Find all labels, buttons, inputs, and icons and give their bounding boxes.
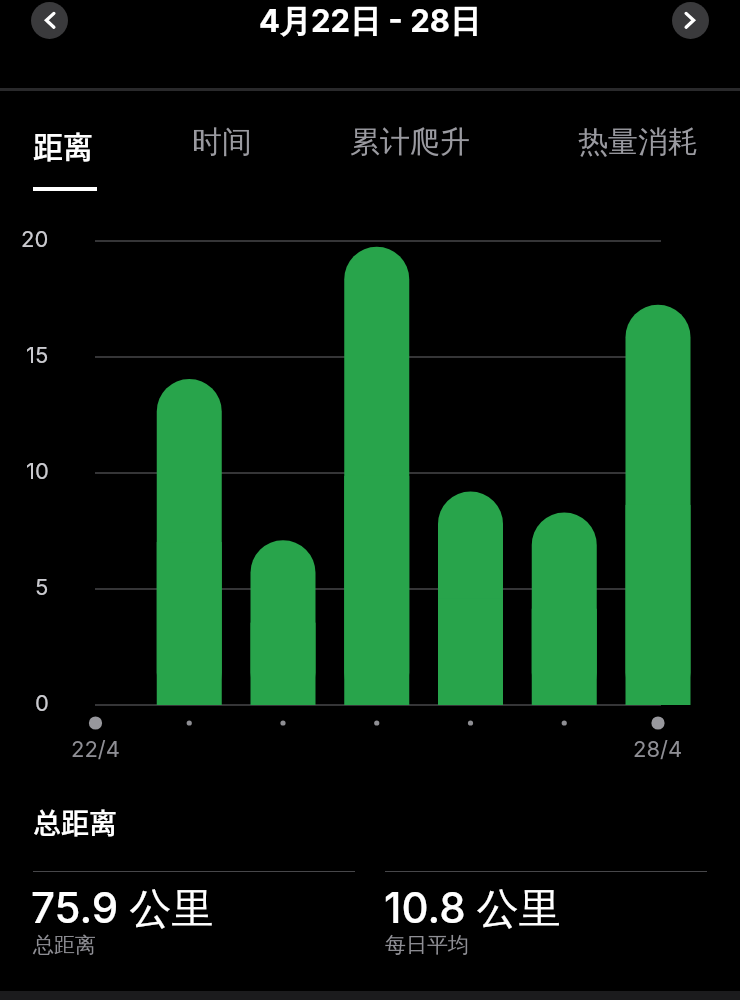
staticText: 10.8 公里 [384, 882, 561, 935]
staticText: 10 [26, 458, 49, 485]
staticText: 总距离 [33, 802, 118, 843]
staticText: 距离 [33, 123, 93, 166]
staticText: 总距离 [33, 932, 96, 958]
staticText: 时间 [192, 123, 252, 161]
staticText: 75.9 公里 [31, 882, 214, 935]
staticText: 28/4 [633, 736, 683, 763]
staticText: 22/4 [71, 736, 120, 763]
button[interactable]: 热量消耗 [578, 123, 698, 161]
button[interactable]: 累计爬升 [350, 123, 470, 161]
staticText: 累计爬升 [350, 123, 470, 161]
staticText: 热量消耗 [578, 123, 698, 161]
button[interactable]: 时间 [192, 123, 252, 161]
staticText: 5 [35, 574, 49, 601]
button[interactable]: 距离 [33, 123, 93, 166]
button[interactable] [672, 2, 709, 39]
staticText: 每日平均 [385, 932, 469, 958]
staticText: 4月22日 - 28日 [259, 2, 481, 41]
staticText: 15 [26, 342, 49, 369]
staticText: 20 [21, 226, 49, 253]
staticText: 0 [35, 690, 49, 717]
button[interactable] [31, 2, 68, 39]
